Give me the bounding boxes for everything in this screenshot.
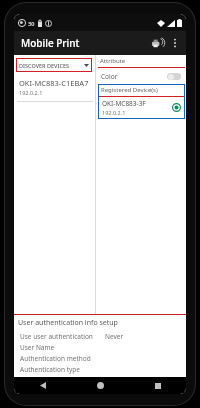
staticText: Color bbox=[101, 72, 167, 81]
button[interactable]: Color bbox=[98, 71, 185, 82]
staticText: Authentication method bbox=[20, 354, 91, 363]
staticText: Mobile Print bbox=[21, 36, 80, 50]
button[interactable]: Use user authentication bbox=[18, 331, 182, 342]
staticText: User Name bbox=[20, 343, 55, 352]
staticText: Authentication type bbox=[20, 365, 80, 374]
button[interactable]: Authentication type bbox=[18, 364, 182, 375]
staticText: Registered Device(s) bbox=[101, 86, 158, 94]
button[interactable]: Recent apps bbox=[129, 377, 186, 394]
staticText: 192.0.2.1 bbox=[19, 89, 43, 96]
staticText: DISCOVER DEVICES bbox=[19, 62, 84, 69]
staticText: User authentication info setup bbox=[18, 318, 118, 328]
staticText: 30 bbox=[28, 20, 35, 27]
button[interactable]: More options bbox=[167, 35, 183, 51]
staticText: 192.0.2.1 bbox=[102, 109, 126, 116]
button[interactable]: OKI-MC883-3F bbox=[99, 97, 184, 118]
staticText: Use user authentication bbox=[20, 332, 93, 341]
button[interactable]: OKI-MC883-C1EBA7 bbox=[14, 77, 95, 98]
staticText: OKI-MC883-3F bbox=[102, 99, 146, 108]
staticText: Attribute bbox=[100, 57, 126, 65]
staticText: Never bbox=[105, 332, 124, 341]
button[interactable]: Authentication method bbox=[18, 353, 182, 364]
button[interactable]: Print device bbox=[147, 33, 167, 53]
staticText: OKI-MC883-C1EBA7 bbox=[19, 78, 89, 88]
button[interactable]: DISCOVER DEVICES bbox=[16, 58, 92, 72]
button[interactable]: User Name bbox=[18, 342, 182, 353]
button[interactable]: Back bbox=[14, 377, 72, 394]
button[interactable]: Home bbox=[72, 377, 129, 394]
